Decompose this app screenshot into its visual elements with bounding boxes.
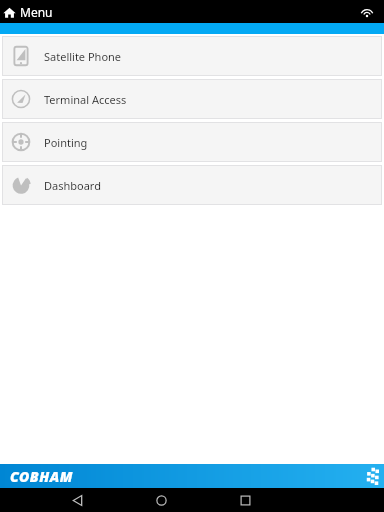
- staticText: Terminal Access: [44, 92, 127, 107]
- other: Cobham mark: [361, 467, 379, 485]
- button[interactable]: Pointing: [2, 122, 382, 162]
- button[interactable]: Terminal Access: [2, 79, 382, 119]
- button[interactable]: Recent apps: [228, 488, 262, 512]
- other: Wi-Fi signal: [360, 5, 374, 19]
- other: Home: [3, 6, 16, 19]
- button[interactable]: Home: [144, 488, 178, 512]
- staticText: Satellite Phone: [44, 49, 122, 64]
- staticText: Pointing: [44, 135, 88, 150]
- staticText: COBHAM: [10, 467, 73, 486]
- staticText: Menu: [20, 4, 53, 20]
- button[interactable]: Back: [60, 488, 94, 512]
- button[interactable]: Dashboard: [2, 165, 382, 205]
- button[interactable]: Satellite Phone: [2, 36, 382, 76]
- button[interactable]: Home: [3, 4, 53, 20]
- staticText: Dashboard: [44, 178, 101, 193]
